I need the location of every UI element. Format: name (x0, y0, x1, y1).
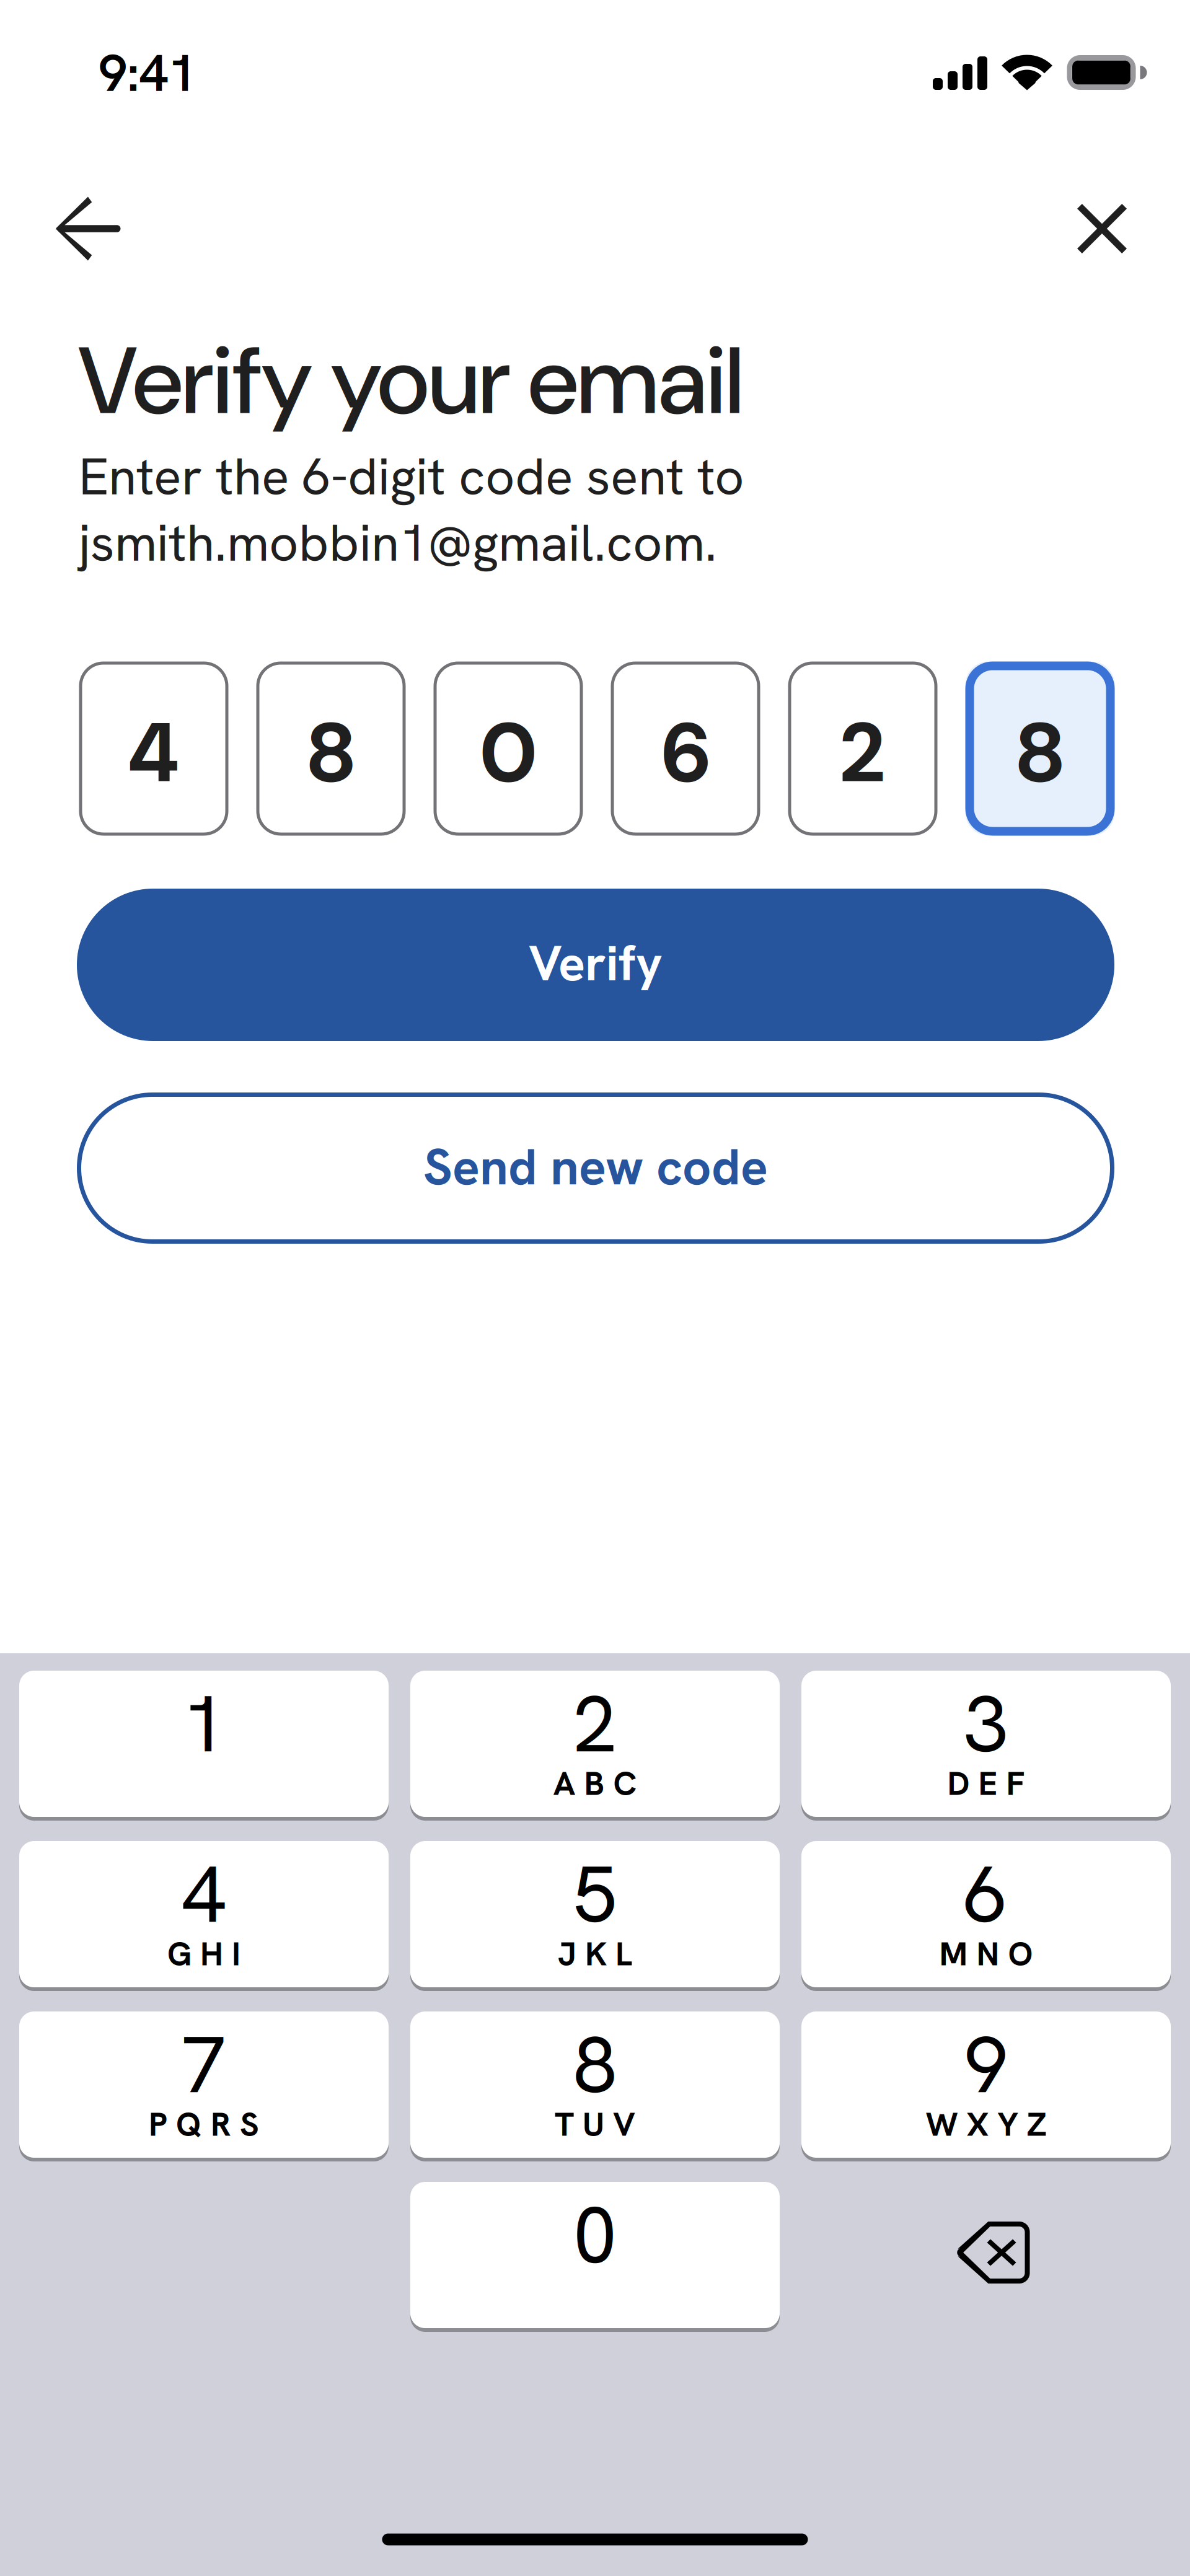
staticText: 5 (573, 1843, 617, 1945)
staticText: G H I (167, 1932, 240, 1975)
staticText: P Q R S (149, 2103, 259, 2146)
staticText: Enter the 6-digit code sent to (79, 443, 744, 510)
staticText: M N O (939, 1932, 1033, 1975)
staticText: 6 (661, 699, 710, 807)
staticText: Send new code (423, 1134, 768, 1200)
button[interactable]: Back (33, 179, 144, 278)
button[interactable]: 6 (801, 1841, 1171, 1991)
staticText: 3 (964, 1673, 1008, 1775)
staticText: 1 (182, 1673, 226, 1775)
button[interactable]: 4 (19, 1841, 389, 1991)
staticText: 4 (128, 699, 179, 807)
staticText: 9 (964, 2014, 1008, 2116)
staticText: D E F (947, 1762, 1025, 1805)
staticText: 0 (480, 699, 537, 807)
button[interactable]: 8 (410, 2011, 780, 2161)
button[interactable]: Verify (77, 889, 1114, 1041)
staticText: 8 (1016, 699, 1064, 807)
button[interactable]: Send new code (77, 1092, 1114, 1244)
button[interactable]: 1 (19, 1671, 389, 1821)
staticText: 8 (573, 2014, 617, 2116)
staticText: jsmith.mobbin1@gmail.com. (79, 509, 717, 576)
staticText: 9:41 (99, 40, 196, 106)
button[interactable]: Close (1052, 179, 1152, 278)
staticText: 4 (182, 1843, 226, 1945)
staticText: 2 (573, 1673, 617, 1775)
staticText: 7 (182, 2014, 226, 2116)
button[interactable]: Delete (808, 2178, 1178, 2328)
staticText: 8 (307, 699, 355, 807)
staticText: W X Y Z (926, 2103, 1047, 2146)
staticText: Verify your email (78, 320, 744, 442)
staticText: 6 (964, 1843, 1008, 1945)
button[interactable]: 0 (410, 2182, 780, 2332)
button[interactable]: 7 (19, 2011, 389, 2161)
staticText: T U V (555, 2103, 635, 2146)
staticText: J K L (558, 1932, 632, 1975)
staticText: Verify (529, 931, 663, 995)
staticText: 2 (840, 699, 885, 807)
button[interactable]: 9 (801, 2011, 1171, 2161)
button[interactable]: 3 (801, 1671, 1171, 1821)
staticText: 0 (573, 2184, 617, 2286)
button[interactable]: 2 (410, 1671, 780, 1821)
staticText: A B C (553, 1762, 637, 1805)
button[interactable]: 5 (410, 1841, 780, 1991)
